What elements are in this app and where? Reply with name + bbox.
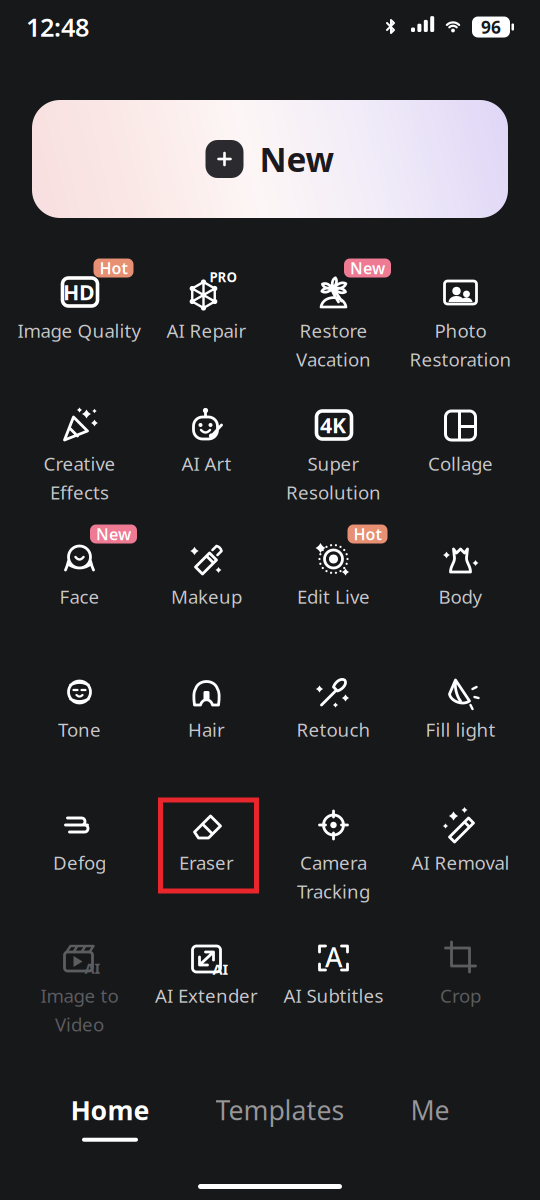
button[interactable]: Creative bbox=[16, 399, 143, 532]
staticText: Photo bbox=[434, 318, 486, 343]
button[interactable]: Photo bbox=[397, 266, 524, 399]
staticText: New bbox=[350, 257, 385, 279]
staticText: Video bbox=[55, 1012, 104, 1037]
button[interactable]: Fill light bbox=[397, 665, 524, 798]
staticText: Camera bbox=[300, 850, 367, 875]
staticText: Crop bbox=[440, 983, 481, 1008]
staticText: Image to bbox=[40, 983, 118, 1008]
button[interactable]: Eraser bbox=[143, 798, 270, 931]
staticText: Creative bbox=[43, 451, 115, 476]
staticText: 96 bbox=[481, 15, 501, 38]
staticText: Tracking bbox=[297, 879, 370, 904]
staticText: AI bbox=[212, 959, 228, 979]
staticText: Hot bbox=[99, 257, 127, 279]
staticText: AI Art bbox=[181, 451, 231, 476]
staticText: AI Subtitles bbox=[283, 983, 383, 1008]
button[interactable]: Collage bbox=[397, 399, 524, 532]
button[interactable]: AI Removal bbox=[397, 798, 524, 931]
staticText: 4K bbox=[320, 411, 346, 439]
button[interactable]: AI bbox=[143, 931, 270, 1064]
staticText: AI Repair bbox=[166, 318, 246, 343]
staticText: Body bbox=[438, 584, 482, 609]
staticText: Eraser bbox=[179, 850, 234, 875]
staticText: Defog bbox=[53, 850, 106, 875]
staticText: Retouch bbox=[296, 717, 370, 742]
staticText: Me bbox=[410, 1092, 449, 1128]
button[interactable]: Hair bbox=[143, 665, 270, 798]
staticText: Restore bbox=[299, 318, 367, 343]
staticText: PRO bbox=[209, 268, 237, 286]
button[interactable]: New bbox=[270, 266, 397, 399]
staticText: Hot bbox=[353, 523, 381, 545]
staticText: AI Extender bbox=[155, 983, 258, 1008]
button[interactable]: New bbox=[16, 532, 143, 665]
button[interactable]: AI Art bbox=[143, 399, 270, 532]
button[interactable]: Hot bbox=[270, 532, 397, 665]
button[interactable]: 4K bbox=[270, 399, 397, 532]
button[interactable]: Body bbox=[397, 532, 524, 665]
button[interactable]: Templates bbox=[200, 1093, 360, 1141]
staticText: Home bbox=[70, 1092, 149, 1128]
staticText: Collage bbox=[428, 451, 493, 476]
staticText: Tone bbox=[58, 717, 101, 742]
button[interactable]: PRO bbox=[143, 266, 270, 399]
button[interactable]: Crop bbox=[397, 931, 524, 1064]
button[interactable]: New bbox=[0, 100, 540, 218]
button[interactable]: Retouch bbox=[270, 665, 397, 798]
button[interactable]: Makeup bbox=[143, 532, 270, 665]
staticText: AI bbox=[84, 958, 100, 978]
button[interactable]: HD bbox=[16, 266, 143, 399]
staticText: Fill light bbox=[425, 717, 495, 742]
button[interactable]: Me bbox=[360, 1093, 500, 1141]
staticText: Hair bbox=[188, 717, 225, 742]
staticText: Face bbox=[59, 584, 99, 609]
staticText: Resolution bbox=[286, 480, 381, 505]
button[interactable]: Home bbox=[52, 1093, 168, 1141]
staticText: Makeup bbox=[171, 584, 242, 609]
staticText: AI Removal bbox=[411, 850, 509, 875]
button[interactable]: Camera bbox=[270, 798, 397, 931]
button[interactable]: Defog bbox=[16, 798, 143, 931]
staticText: Templates bbox=[215, 1092, 344, 1128]
staticText: New bbox=[259, 137, 334, 181]
staticText: New bbox=[96, 523, 131, 545]
staticText: Restoration bbox=[409, 347, 511, 372]
staticText: Super bbox=[307, 451, 359, 476]
button[interactable]: Tone bbox=[16, 665, 143, 798]
staticText: HD bbox=[63, 278, 95, 306]
staticText: Image Quality bbox=[17, 318, 141, 343]
staticText: Edit Live bbox=[297, 584, 370, 609]
button[interactable]: AI bbox=[16, 931, 143, 1064]
staticText: Effects bbox=[50, 480, 109, 505]
staticText: A bbox=[325, 939, 342, 975]
button[interactable]: A bbox=[270, 931, 397, 1064]
staticText: Vacation bbox=[296, 347, 371, 372]
staticText: 12:48 bbox=[26, 10, 89, 44]
